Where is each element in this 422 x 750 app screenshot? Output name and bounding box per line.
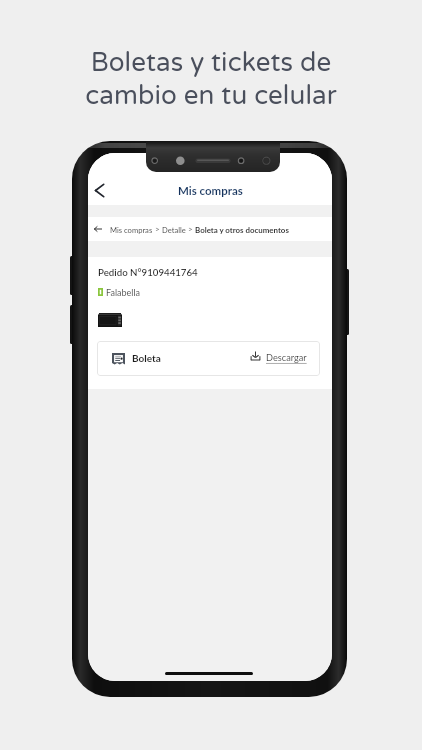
- staticText: Boleta y otros documentos: [195, 225, 289, 234]
- button[interactable]: Descargar: [247, 349, 309, 367]
- staticText: >: [153, 224, 162, 234]
- staticText: Mis compras: [110, 225, 153, 234]
- staticText: Falabella: [106, 287, 141, 298]
- staticText: Mis compras: [178, 184, 243, 198]
- staticText: Descargar: [266, 352, 307, 363]
- staticText: Pedido N°9109441764: [98, 266, 198, 278]
- button[interactable]: Back: [89, 180, 109, 200]
- staticText: >: [186, 224, 195, 234]
- staticText: Boleta: [132, 352, 161, 364]
- button[interactable]: Boleta: [97, 341, 320, 376]
- staticText: Detalle: [162, 225, 186, 234]
- staticText: Boletas y tickets de cambio en tu celula…: [0, 47, 422, 111]
